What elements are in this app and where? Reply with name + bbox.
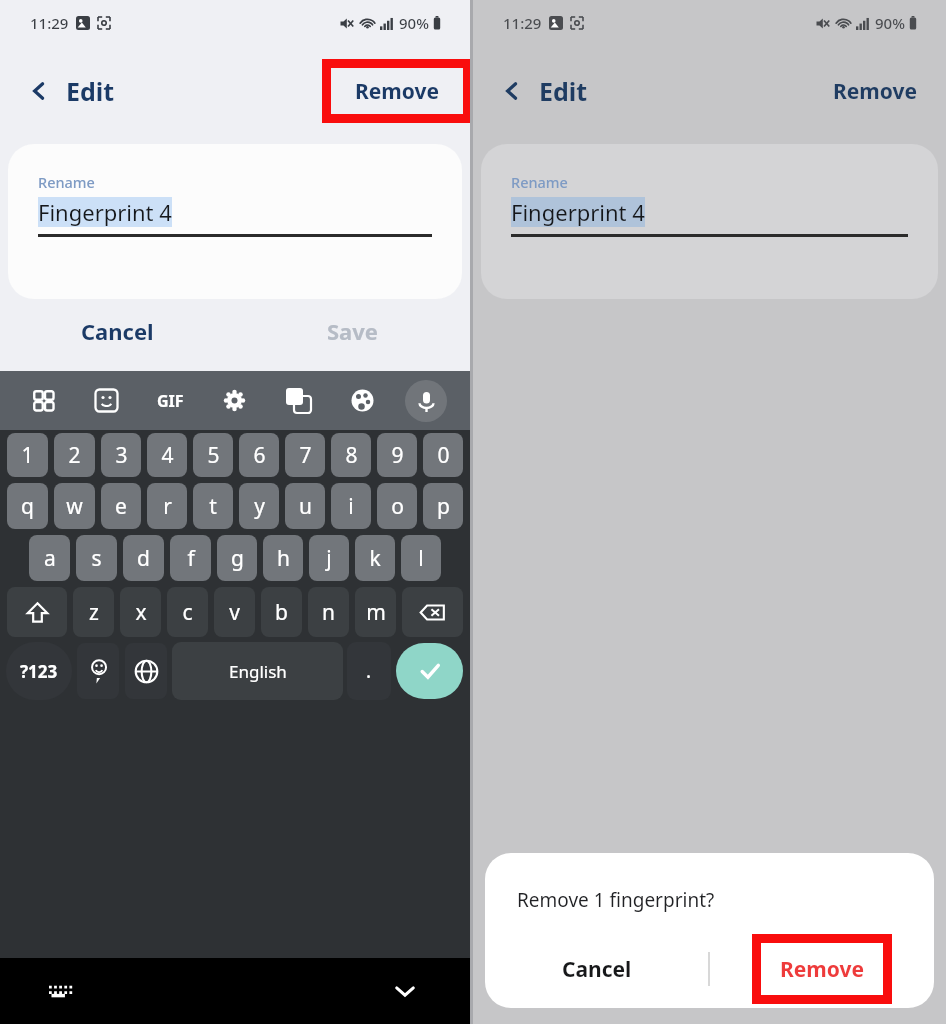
staticText: v <box>229 598 240 627</box>
button[interactable]: Key <box>402 587 463 637</box>
staticText: d <box>137 544 150 573</box>
button[interactable]: Key <box>125 643 167 699</box>
button[interactable]: x <box>120 587 161 637</box>
button[interactable]: e <box>101 483 141 529</box>
button[interactable]: Key <box>7 587 67 637</box>
button[interactable]: Cancel <box>0 299 235 363</box>
button[interactable]: o <box>377 483 417 529</box>
button[interactable]: w <box>54 483 95 529</box>
staticText: English <box>229 660 287 683</box>
staticText: f <box>187 544 195 573</box>
button[interactable]: 3 <box>101 433 141 477</box>
button[interactable]: q <box>7 483 48 529</box>
button[interactable]: s <box>76 535 117 581</box>
button[interactable]: Keyboard <box>44 974 78 1008</box>
button[interactable]: v <box>214 587 255 637</box>
button[interactable]: 7 <box>285 433 325 477</box>
staticText: 11:29 <box>503 13 542 33</box>
button[interactable]: Keyboard tool <box>202 371 266 430</box>
button[interactable]: y <box>239 483 279 529</box>
button[interactable]: t <box>193 483 233 529</box>
button[interactable]: Hide keyboard <box>388 974 422 1008</box>
button[interactable]: Keyboard tool <box>75 371 138 430</box>
staticText: Fingerprint 4 <box>38 197 172 227</box>
staticText: e <box>115 492 127 521</box>
button[interactable]: p <box>423 483 463 529</box>
button[interactable]: Cancel <box>485 930 708 1008</box>
button[interactable]: Keyboard tool <box>12 371 75 430</box>
button[interactable]: Done <box>396 643 463 699</box>
staticText: c <box>182 598 193 627</box>
button[interactable]: 2 <box>54 433 95 477</box>
staticText: j <box>326 544 332 573</box>
staticText: Edit <box>539 74 588 108</box>
button[interactable]: i <box>331 483 371 529</box>
button[interactable]: 6 <box>239 433 279 477</box>
staticText: m <box>366 598 386 627</box>
button[interactable]: Keyboard tool <box>394 371 458 430</box>
staticText: Rename <box>511 172 568 192</box>
button[interactable]: Remove <box>833 77 918 106</box>
staticText: a <box>44 544 56 573</box>
staticText: z <box>89 598 99 627</box>
staticText: 9 <box>391 441 404 470</box>
button[interactable]: Keyboard tool <box>266 371 330 430</box>
staticText: Remove <box>355 77 440 106</box>
staticText: 7 <box>299 441 312 470</box>
button[interactable]: r <box>147 483 187 529</box>
staticText: g <box>231 544 244 573</box>
staticText: Rename <box>38 172 95 192</box>
staticText: s <box>91 544 102 573</box>
staticText: q <box>21 492 34 521</box>
staticText: Fingerprint 4 <box>511 197 645 227</box>
button[interactable]: g <box>217 535 257 581</box>
staticText: Cancel <box>562 955 632 984</box>
button[interactable]: Key <box>77 643 119 699</box>
button[interactable]: . <box>347 642 391 700</box>
button[interactable]: 1 <box>7 433 48 477</box>
button[interactable]: n <box>308 587 349 637</box>
staticText: y <box>254 492 265 521</box>
button[interactable]: f <box>170 535 211 581</box>
button[interactable]: m <box>355 587 396 637</box>
staticText: 4 <box>161 441 174 470</box>
button[interactable]: d <box>123 535 164 581</box>
staticText: 11:29 <box>30 13 69 33</box>
button[interactable]: u <box>285 483 325 529</box>
staticText: 2 <box>68 441 81 470</box>
staticText: p <box>437 492 450 521</box>
button[interactable]: j <box>309 535 349 581</box>
staticText: 90% <box>399 13 429 33</box>
button[interactable]: Save <box>235 299 470 363</box>
button[interactable]: GIF <box>138 371 202 430</box>
button[interactable]: Remove <box>761 943 883 995</box>
button[interactable]: 9 <box>377 433 417 477</box>
staticText: o <box>391 492 404 521</box>
button[interactable]: ?123 <box>6 642 72 700</box>
button[interactable]: 5 <box>193 433 233 477</box>
staticText: t <box>209 492 217 521</box>
button[interactable]: Back <box>499 74 588 108</box>
button[interactable]: l <box>401 535 441 581</box>
staticText: Remove <box>780 955 865 984</box>
button[interactable]: 0 <box>423 433 463 477</box>
staticText: 0 <box>437 441 450 470</box>
button[interactable]: b <box>261 587 302 637</box>
button[interactable]: English <box>172 642 343 700</box>
button[interactable]: h <box>263 535 303 581</box>
button[interactable]: 4 <box>147 433 187 477</box>
button[interactable]: a <box>29 535 70 581</box>
staticText: b <box>275 598 288 627</box>
staticText: Cancel <box>81 316 154 346</box>
button[interactable]: Keyboard tool <box>330 371 394 430</box>
button[interactable]: k <box>355 535 395 581</box>
staticText: r <box>163 492 172 521</box>
button[interactable]: Remove <box>331 68 463 114</box>
button[interactable]: 8 <box>331 433 371 477</box>
staticText: l <box>418 544 424 573</box>
button[interactable]: c <box>167 587 208 637</box>
button[interactable]: z <box>73 587 114 637</box>
staticText: 6 <box>253 441 266 470</box>
staticText: Edit <box>66 74 115 108</box>
button[interactable]: Back <box>26 74 115 108</box>
